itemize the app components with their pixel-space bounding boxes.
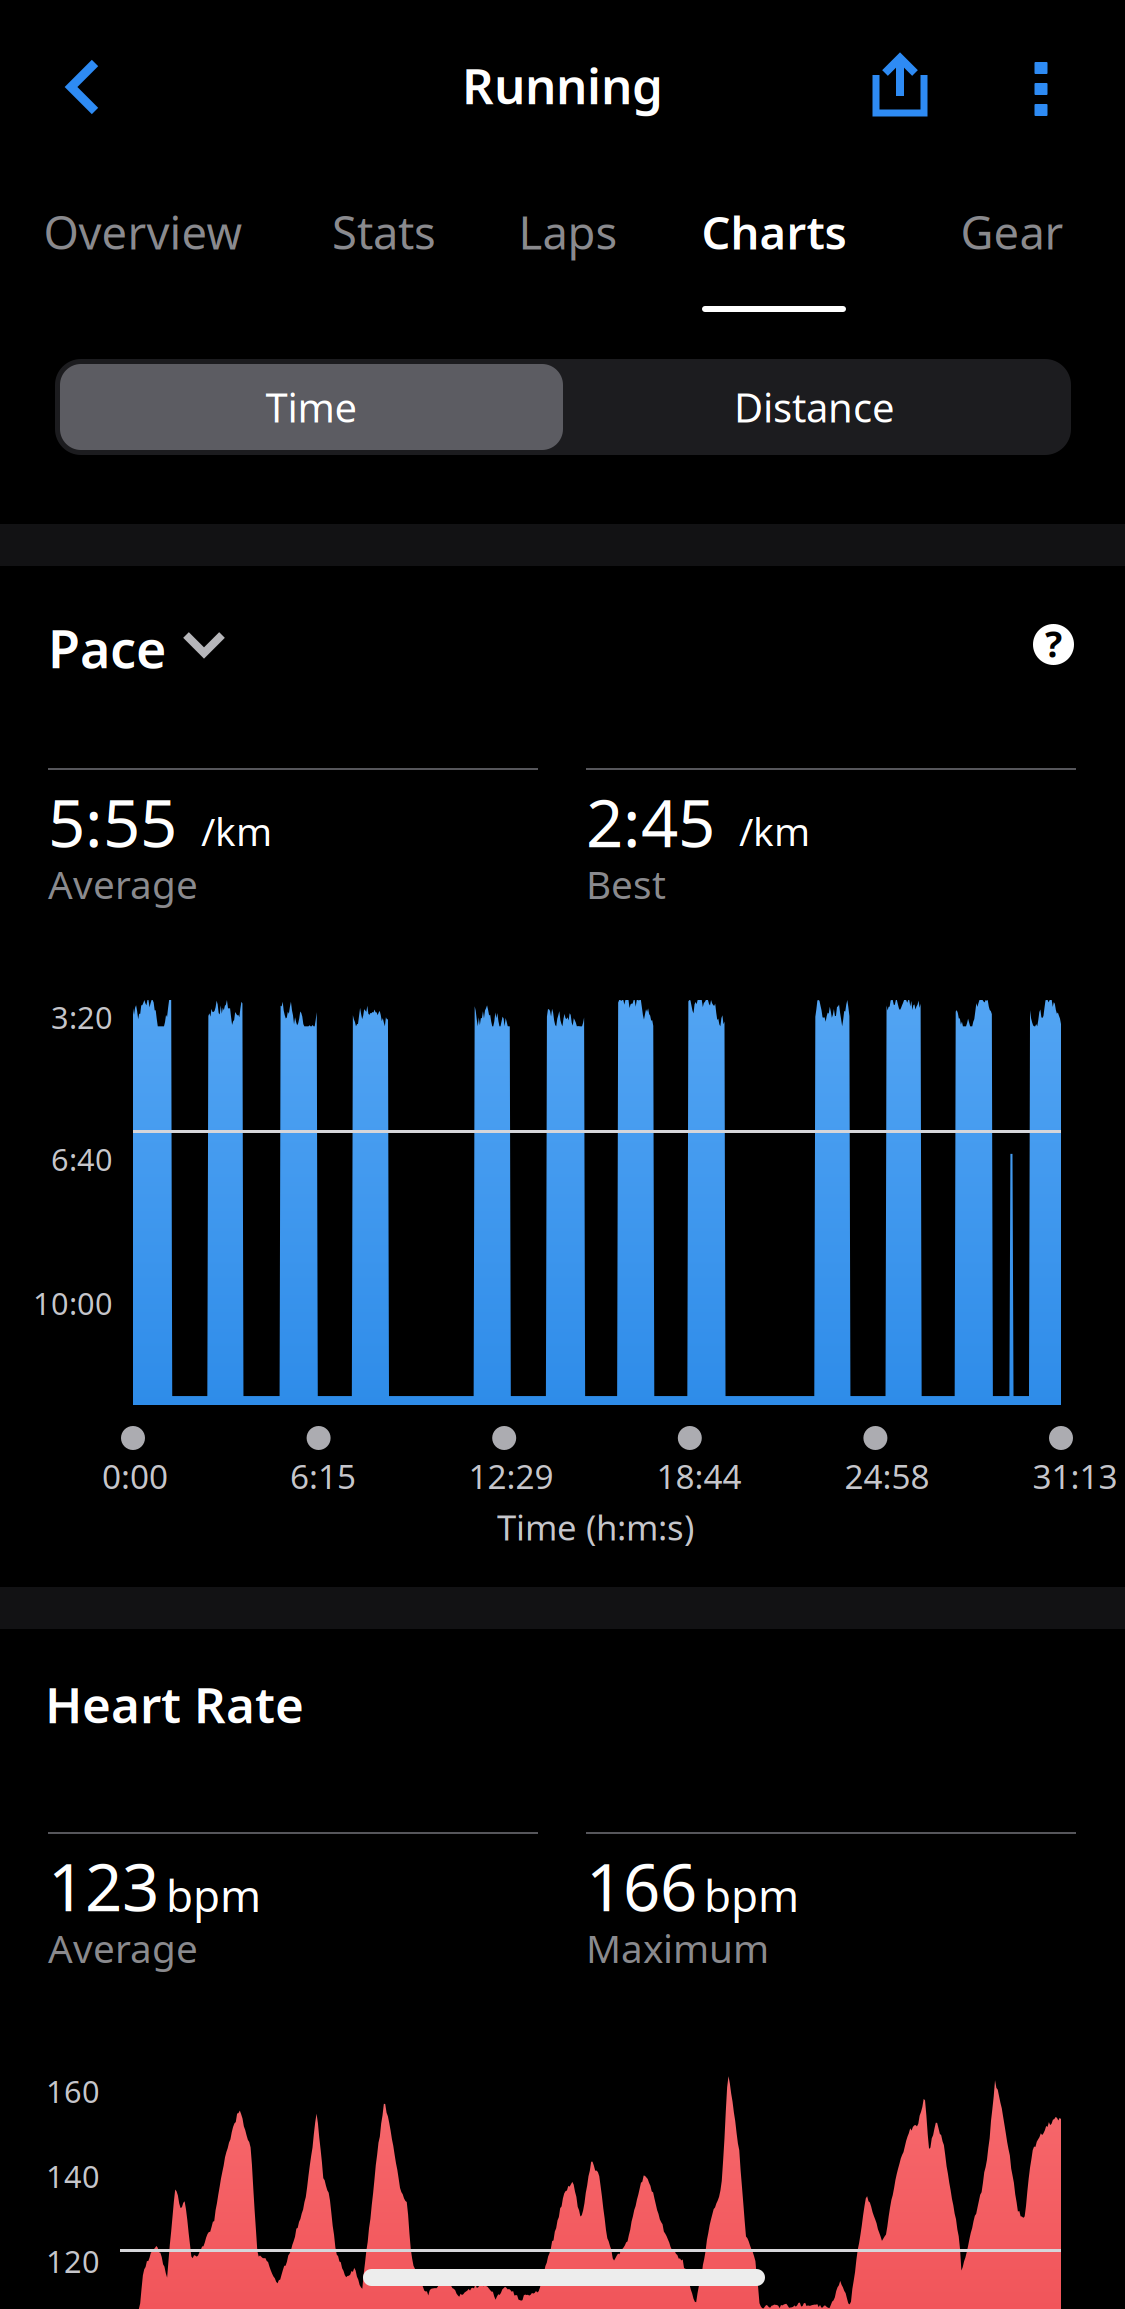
staticText: Pace <box>48 613 166 683</box>
staticText: 166 <box>586 1843 697 1929</box>
staticText: Gear <box>960 202 1063 262</box>
staticText: bpm <box>166 1866 261 1924</box>
staticText: Time (h:m:s) <box>497 1504 694 1550</box>
staticText: 18:44 <box>656 1454 741 1498</box>
staticText: /km <box>739 805 810 857</box>
staticText: Best <box>586 858 666 910</box>
staticText: 2:45 <box>586 779 715 865</box>
staticText: Average <box>48 1922 198 1974</box>
staticText: 10:00 <box>33 1283 113 1323</box>
button[interactable]: Pace <box>48 622 226 674</box>
staticText: Overview <box>43 202 242 262</box>
staticText: Laps <box>518 202 617 262</box>
button[interactable]: Back <box>14 32 152 142</box>
staticText: 12:29 <box>468 1454 553 1498</box>
staticText: 123 <box>48 1843 159 1929</box>
staticText: 6:15 <box>290 1454 356 1498</box>
staticText: 31:13 <box>1032 1454 1117 1498</box>
button[interactable]: Charts <box>654 207 894 327</box>
staticText: Stats <box>332 202 436 262</box>
staticText: Heart Rate <box>45 1671 304 1737</box>
staticText: bpm <box>704 1866 799 1924</box>
staticText: 140 <box>46 2156 100 2196</box>
button[interactable]: Stats <box>264 207 504 327</box>
button[interactable]: Distance <box>563 364 1066 450</box>
button[interactable]: Time <box>60 364 563 450</box>
staticText: Distance <box>734 380 895 433</box>
staticText: 160 <box>46 2071 100 2111</box>
staticText: /km <box>201 805 272 857</box>
button[interactable]: Share <box>843 31 959 145</box>
button[interactable]: Overview <box>23 207 263 327</box>
staticText: 3:20 <box>51 997 113 1037</box>
staticText: Time <box>265 380 357 433</box>
staticText: 5:55 <box>48 779 177 865</box>
staticText: 0:00 <box>102 1454 168 1498</box>
staticText: 24:58 <box>844 1454 929 1498</box>
button[interactable]: Help <box>1033 624 1074 665</box>
button[interactable]: Laps <box>448 207 688 327</box>
button[interactable]: More options <box>992 35 1090 143</box>
staticText: Charts <box>701 202 846 262</box>
staticText: Average <box>48 858 198 910</box>
staticText: 120 <box>46 2241 100 2281</box>
button[interactable]: Gear <box>892 207 1125 327</box>
staticText: ? <box>1045 620 1062 667</box>
staticText: Running <box>462 52 663 118</box>
staticText: Maximum <box>586 1922 769 1974</box>
staticText: 6:40 <box>51 1139 113 1179</box>
